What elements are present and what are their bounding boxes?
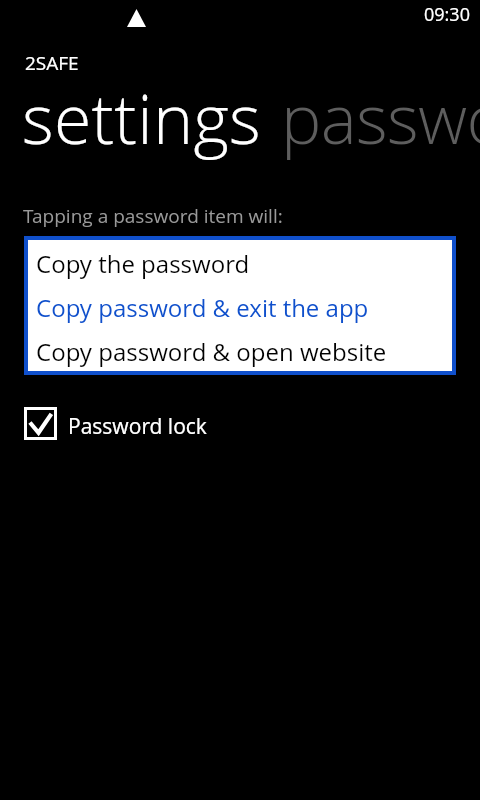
button[interactable]: Password lock: [24, 402, 214, 446]
button[interactable]: password: [273, 88, 480, 166]
staticText: settings: [22, 71, 274, 149]
staticText: password: [281, 71, 480, 149]
staticText: Copy password & open website: [36, 335, 387, 368]
staticText: Tapping a password item will:: [23, 203, 283, 229]
button[interactable]: Copy password & exit the app: [28, 284, 452, 328]
staticText: Password lock: [68, 412, 207, 441]
button[interactable]: Copy the password: [28, 240, 452, 284]
button[interactable]: Copy password & open website: [28, 328, 452, 372]
staticText: 2SAFE: [25, 50, 79, 76]
button[interactable]: Signal strength: [116, 0, 156, 32]
staticText: 09:30: [424, 2, 470, 27]
staticText: Copy password & exit the app: [36, 291, 369, 324]
button[interactable]: settings: [14, 88, 266, 166]
staticText: Copy the password: [36, 247, 250, 280]
